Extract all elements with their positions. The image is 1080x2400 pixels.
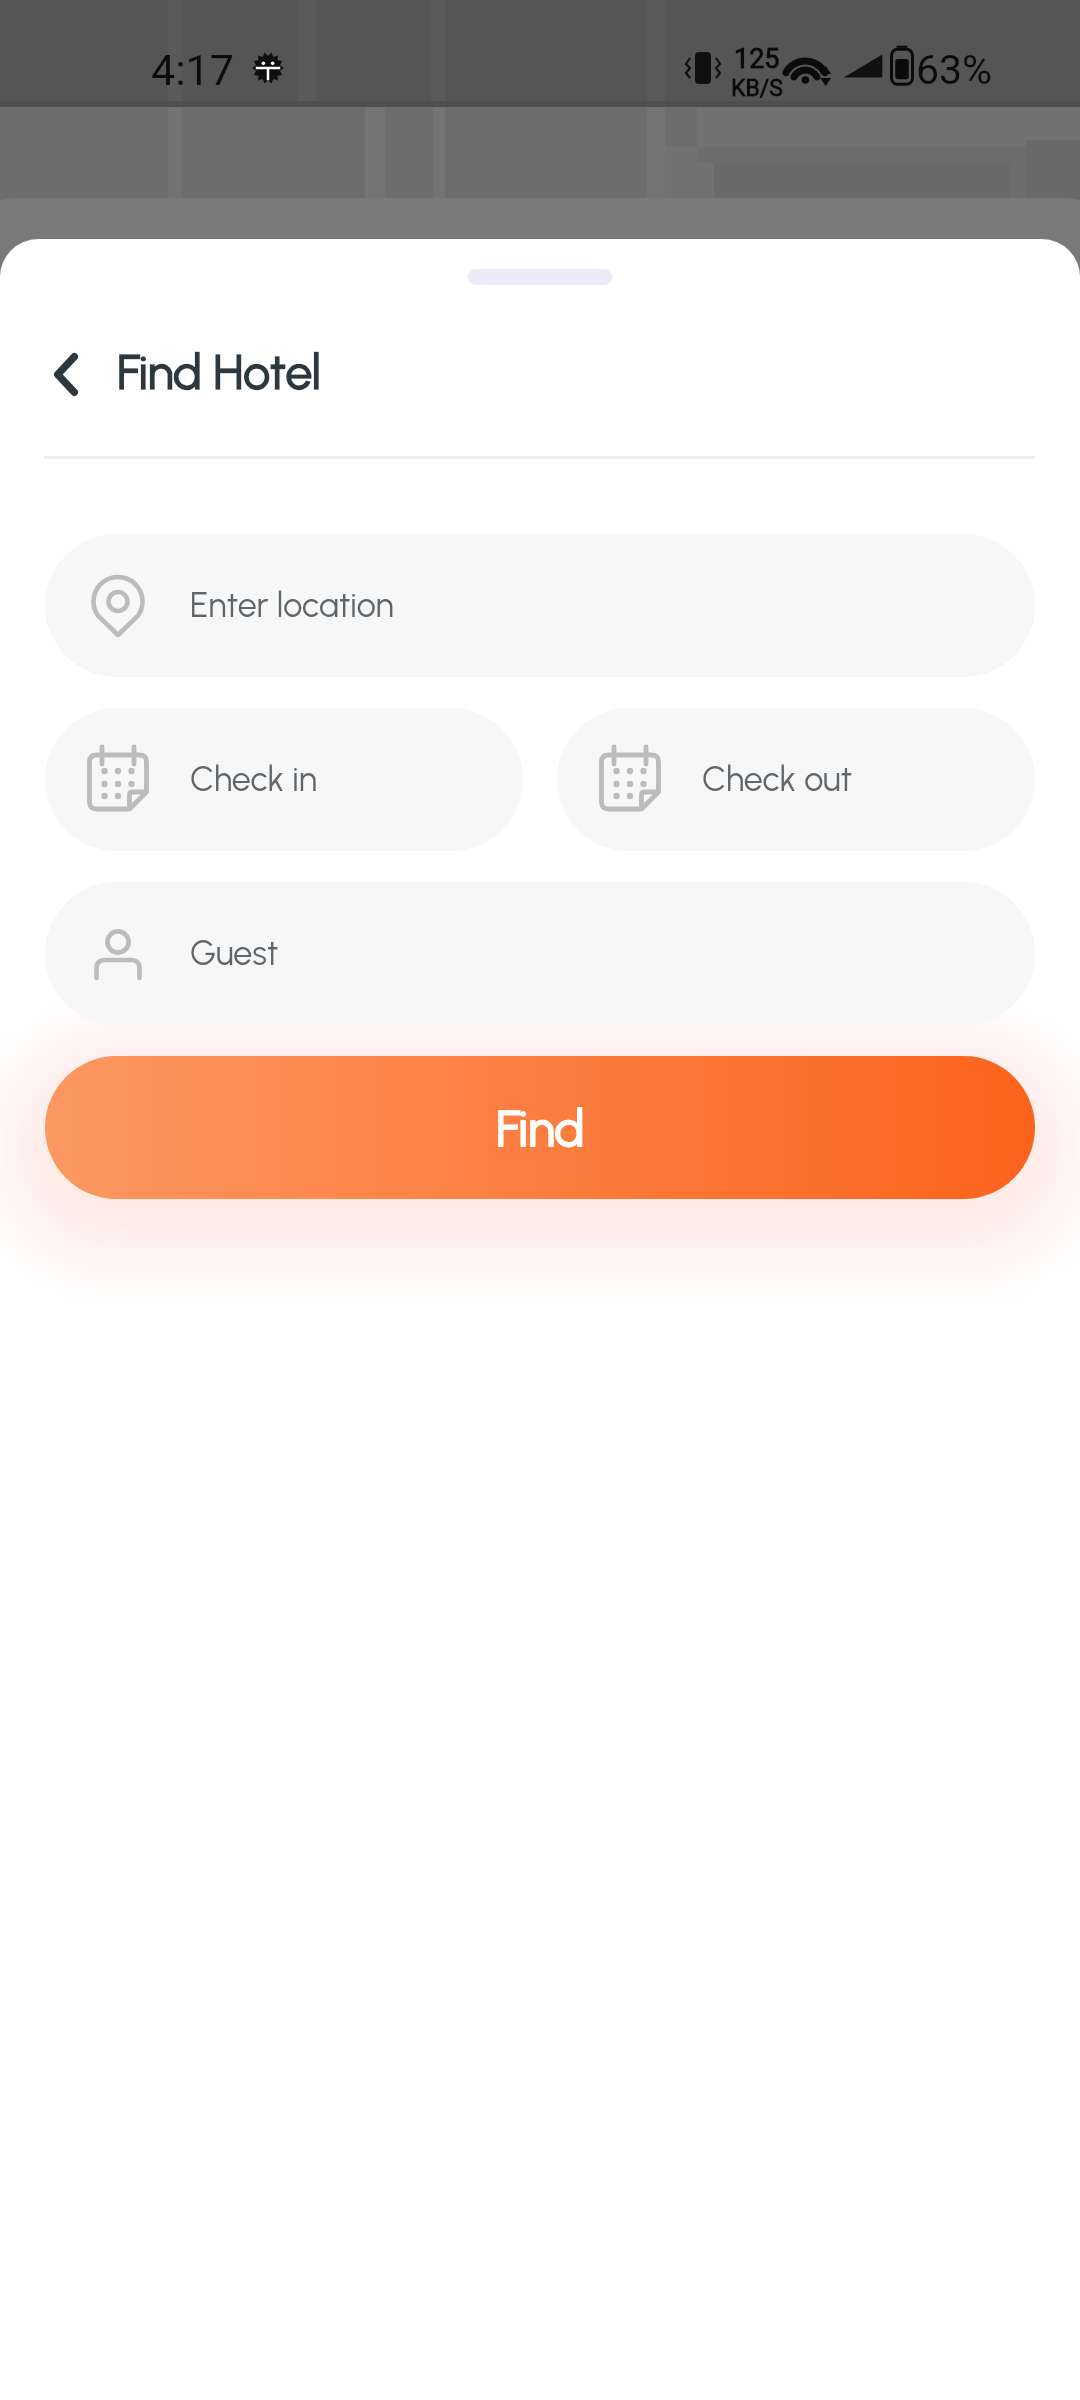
button[interactable]: Guest bbox=[45, 882, 1035, 1025]
staticText: Find Hotel bbox=[117, 343, 321, 401]
button[interactable]: Enter location bbox=[45, 534, 1035, 677]
staticText: 4:17 bbox=[151, 45, 234, 95]
button[interactable]: Back bbox=[25, 324, 107, 424]
button[interactable]: Check in bbox=[45, 708, 523, 851]
staticText: Guest bbox=[190, 933, 279, 974]
staticText: Check out bbox=[702, 759, 853, 800]
button[interactable]: Find bbox=[45, 1056, 1035, 1199]
staticText: Check in bbox=[190, 759, 318, 800]
staticText: 63% bbox=[916, 46, 993, 94]
staticText: Enter location bbox=[190, 585, 394, 626]
button[interactable]: Check out bbox=[557, 708, 1035, 851]
staticText: KB/S bbox=[731, 75, 783, 102]
staticText: 125 bbox=[734, 43, 780, 75]
staticText: Find bbox=[496, 1098, 585, 1158]
